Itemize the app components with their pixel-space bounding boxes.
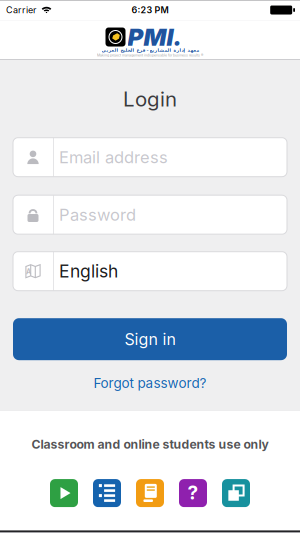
button[interactable]: Videos: [50, 479, 78, 507]
staticText: English: [59, 261, 118, 281]
staticText: Forgot password?: [93, 375, 206, 391]
staticText: Login: [123, 87, 177, 111]
button[interactable]: Sign in: [13, 318, 287, 360]
button[interactable]: Documents: [136, 479, 164, 507]
staticText: Sign in: [124, 330, 175, 349]
button[interactable]: Flashcards: [222, 479, 250, 507]
staticText: Classroom and online students use only: [31, 437, 268, 452]
button[interactable]: Help: [179, 479, 207, 507]
button[interactable]: A: [13, 252, 287, 291]
button[interactable]: Quizzes: [93, 479, 121, 507]
staticText: ?: [187, 481, 198, 504]
button[interactable]: Forgot password?: [93, 375, 206, 391]
staticText: معهد إدارة المشاريع - فرع الخليج العربي: [101, 47, 199, 53]
staticText: Making project management indispensable …: [97, 53, 203, 57]
staticText: A: [26, 268, 31, 276]
staticText: Email address: [59, 147, 168, 167]
staticText: PMI.: [127, 23, 181, 51]
staticText: Password: [59, 205, 136, 224]
staticText: Carrier: [6, 5, 36, 15]
staticText: 6:23 PM: [131, 5, 168, 15]
button[interactable]: Email address: [13, 138, 287, 177]
button[interactable]: Password: [13, 195, 287, 234]
